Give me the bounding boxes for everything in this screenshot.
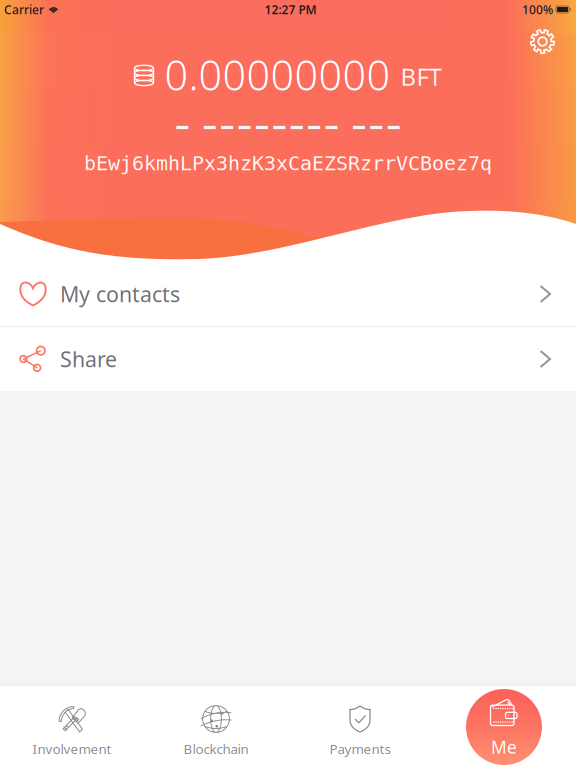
staticText: bEwj6kmhLPx3hzK3xCaEZSRzrrVCBoez7q [84, 152, 492, 175]
button[interactable]: Share [0, 327, 576, 391]
button[interactable]: My contacts [0, 262, 576, 326]
staticText: Me [491, 735, 517, 758]
staticText: 0.00000000 [164, 47, 390, 102]
staticText: Carrier [4, 1, 44, 17]
staticText: 100% [522, 1, 553, 17]
button[interactable]: Payments [288, 686, 432, 768]
staticText: My contacts [60, 280, 180, 308]
button[interactable]: Involvement [0, 686, 144, 768]
button[interactable]: Me [432, 686, 576, 768]
staticText: Blockchain [183, 740, 248, 758]
staticText: BFT [400, 60, 441, 92]
staticText: 12:27 PM [264, 1, 316, 17]
button[interactable]: Blockchain [144, 686, 288, 768]
staticText: Involvement [32, 740, 111, 758]
button[interactable]: Settings [521, 20, 564, 63]
staticText: Payments [329, 740, 390, 758]
staticText: Share [60, 345, 117, 373]
